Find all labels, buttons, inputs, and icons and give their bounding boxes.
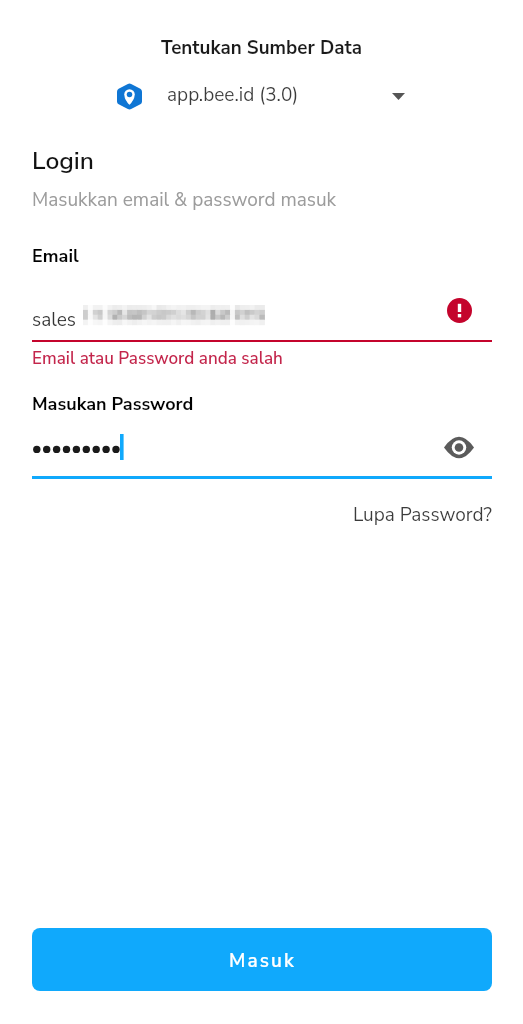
staticText: Tentukan Sumber Data xyxy=(0,35,523,61)
staticText: Email atau Password anda salah xyxy=(32,347,283,370)
staticText: Masukkan email & password masuk xyxy=(32,187,337,213)
staticText: Masukan Password xyxy=(32,392,194,417)
staticText: Masuk xyxy=(229,948,296,974)
staticText: sales xyxy=(32,307,76,333)
button[interactable]: Show password xyxy=(441,430,477,464)
button[interactable]: app.bee.id (3.0) xyxy=(105,76,405,116)
button[interactable]: Masuk xyxy=(32,928,492,991)
staticText: Login xyxy=(32,144,94,177)
staticText: Email xyxy=(32,244,79,269)
staticText: app.bee.id (3.0) xyxy=(167,82,299,108)
other: Error xyxy=(447,298,472,323)
button[interactable]: Lupa Password? xyxy=(0,502,492,528)
